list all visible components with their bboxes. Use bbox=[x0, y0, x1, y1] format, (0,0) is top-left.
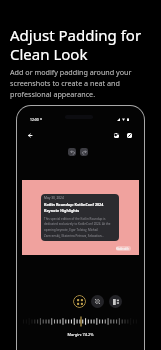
staticText: Margin: 74.2% bbox=[17, 332, 144, 337]
button[interactable]: Padding bbox=[73, 295, 86, 308]
staticText: Adjust Padding for Clean Look bbox=[10, 25, 158, 64]
staticText: 12:00 bbox=[30, 117, 39, 122]
staticText: This special edition of the Kotlin Round… bbox=[44, 217, 113, 238]
button[interactable]: Undo bbox=[68, 148, 76, 156]
button[interactable]: Share bbox=[116, 246, 131, 251]
button[interactable]: Edit bbox=[122, 128, 136, 142]
button[interactable]: Layout bbox=[109, 295, 122, 308]
button[interactable]: Back bbox=[23, 128, 37, 142]
staticText: Kotlin Roundup: KotlinConf 2024 Keynote … bbox=[44, 202, 116, 213]
staticText: Made with Graphit bbox=[116, 247, 131, 251]
button[interactable]: Call bbox=[109, 128, 123, 142]
staticText: May 30, 2024 bbox=[44, 196, 64, 200]
button[interactable]: Redo bbox=[80, 148, 88, 156]
button[interactable]: Background bbox=[91, 295, 104, 308]
staticText: Add or modify padding around your screen… bbox=[10, 67, 152, 99]
